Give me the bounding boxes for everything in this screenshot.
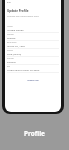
staticText: Partner [7,60,16,63]
staticText: 9:41 [7,1,12,4]
staticText: Female [7,36,16,39]
staticText: March 20, 1995 [7,44,25,47]
staticText: Angela Steven [7,28,24,31]
staticText: Status [7,49,13,52]
button[interactable]: Update now [25,78,41,83]
staticText: Gender [7,33,15,36]
button[interactable]: Birth date [7,41,59,49]
button[interactable]: Status [7,49,59,57]
staticText: Lorem ipsum dolor sit amet [7,68,40,71]
button[interactable]: Gender [7,33,59,41]
staticText: Partner [7,57,15,60]
staticText: Update Profile [7,9,29,13]
staticText: Birth date [7,41,17,44]
button[interactable]: Partner [7,57,59,65]
staticText: Free (Social) [7,52,22,55]
button[interactable]: Bio [7,65,59,73]
staticText: Profile [0,129,69,138]
staticText: Change any information here [7,15,39,18]
button[interactable]: Name [7,25,59,33]
staticText: Bio [7,65,11,68]
staticText: Name [7,25,13,28]
staticText: Update now [27,79,39,82]
